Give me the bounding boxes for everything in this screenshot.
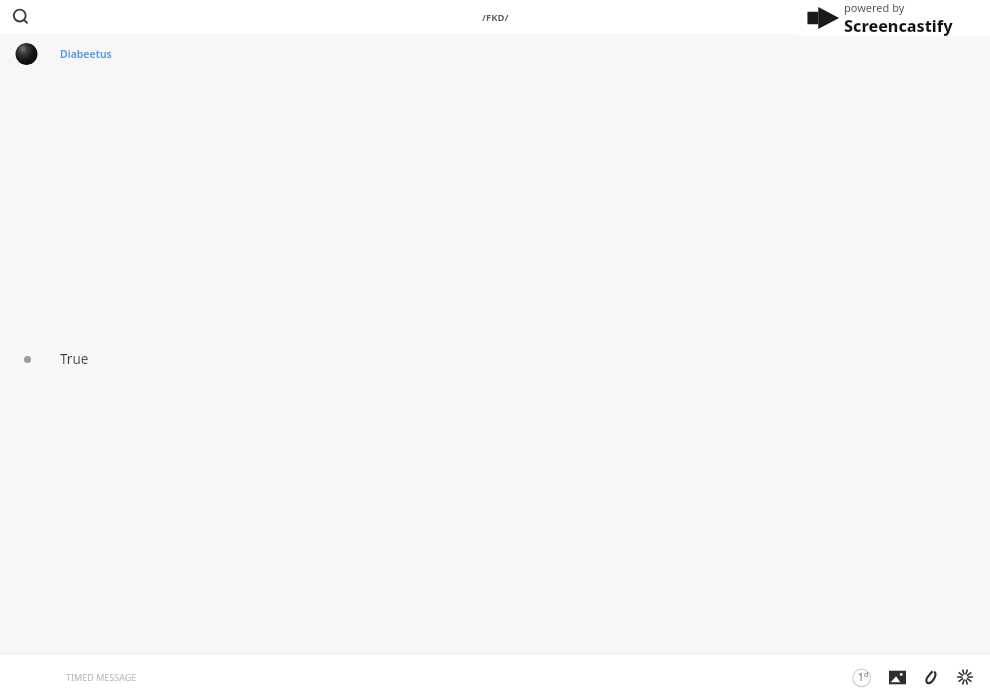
staticText: powered by — [844, 0, 905, 15]
staticText: d — [864, 670, 869, 680]
staticText: 1 — [858, 670, 864, 684]
button[interactable]: Search — [6, 2, 36, 32]
button[interactable]: Timed message duration — [846, 660, 880, 694]
button[interactable]: Send photo — [880, 660, 914, 694]
staticText: Screencastify — [844, 15, 953, 36]
button[interactable]: Effects — [948, 660, 982, 694]
staticText: TIMED MESSAGE — [66, 671, 137, 683]
staticText: True — [60, 350, 89, 368]
button[interactable]: Call — [930, 3, 958, 31]
button[interactable]: Attach file — [914, 660, 948, 694]
button[interactable]: Powered by Screencastify — [798, 0, 990, 36]
staticText: Diabeetus — [60, 47, 112, 61]
staticText: /FKD/ — [482, 11, 509, 24]
